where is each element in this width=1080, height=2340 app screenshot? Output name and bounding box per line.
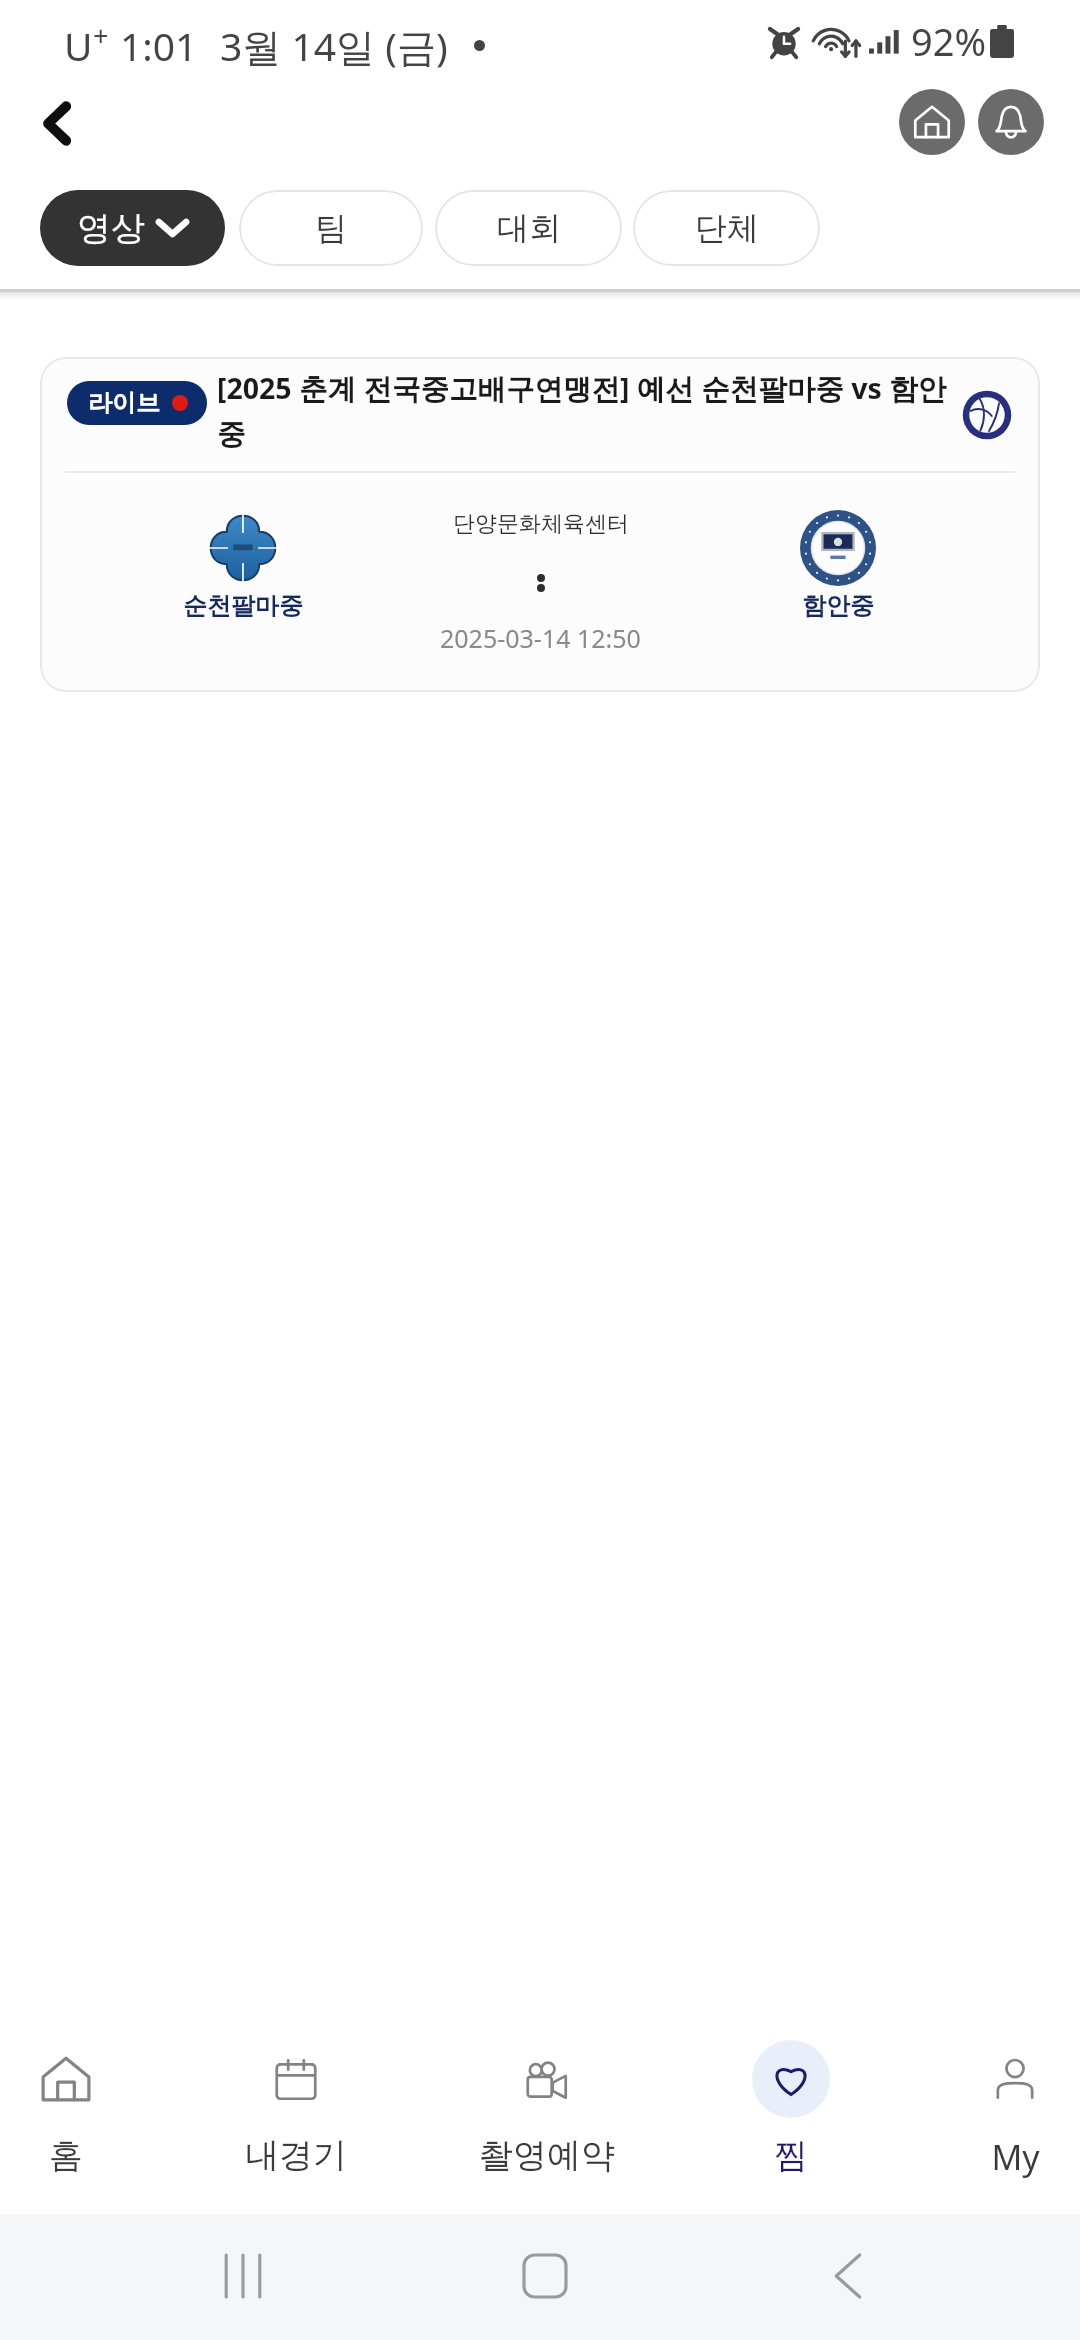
button[interactable]: 홈 <box>0 2020 166 2214</box>
staticText: 2025-03-14 12:50 <box>440 621 641 655</box>
staticText: 영상 <box>77 207 145 250</box>
button[interactable]: 대회 <box>435 190 622 266</box>
staticText: 순천팔마중 <box>183 591 303 621</box>
staticText: + <box>93 17 109 54</box>
button[interactable]: Recents <box>222 2255 264 2297</box>
staticText: 내경기 <box>245 2134 347 2177</box>
button[interactable]: 촬영예약 <box>447 2020 647 2214</box>
staticText: 3월 14일 (금) <box>220 19 448 72</box>
staticText: [2025 춘계 전국중고배구연맹전] 예선 순천팔마중 vs 함안중 <box>217 369 950 452</box>
button[interactable]: 라이브 <box>40 357 1040 692</box>
staticText: 팀 <box>315 208 347 248</box>
staticText: 1:01 <box>120 19 198 72</box>
staticText: 대회 <box>497 208 561 248</box>
staticText: 라이브 <box>88 388 160 418</box>
staticText: 찜 <box>774 2134 808 2177</box>
button[interactable]: 단체 <box>633 190 820 266</box>
button[interactable]: 찜 <box>691 2020 891 2214</box>
button[interactable]: Notifications <box>978 89 1044 155</box>
staticText: U <box>64 19 93 72</box>
staticText: 단체 <box>695 208 759 248</box>
button[interactable]: Home <box>899 89 965 155</box>
staticText: 홈 <box>49 2134 83 2177</box>
button[interactable]: Home <box>524 2255 566 2297</box>
staticText: 함안중 <box>802 591 874 621</box>
button[interactable]: 팀 <box>239 190 423 266</box>
staticText: 단양문화체육센터 <box>453 510 629 538</box>
staticText: 촬영예약 <box>479 2134 615 2177</box>
button[interactable]: 내경기 <box>196 2020 396 2214</box>
button[interactable]: 영상 <box>40 190 225 266</box>
button[interactable]: Back <box>827 2255 869 2297</box>
button[interactable]: My <box>915 2020 1080 2214</box>
button[interactable]: Back <box>17 83 97 163</box>
staticText: 92% <box>911 15 987 67</box>
staticText: My <box>991 2134 1040 2180</box>
